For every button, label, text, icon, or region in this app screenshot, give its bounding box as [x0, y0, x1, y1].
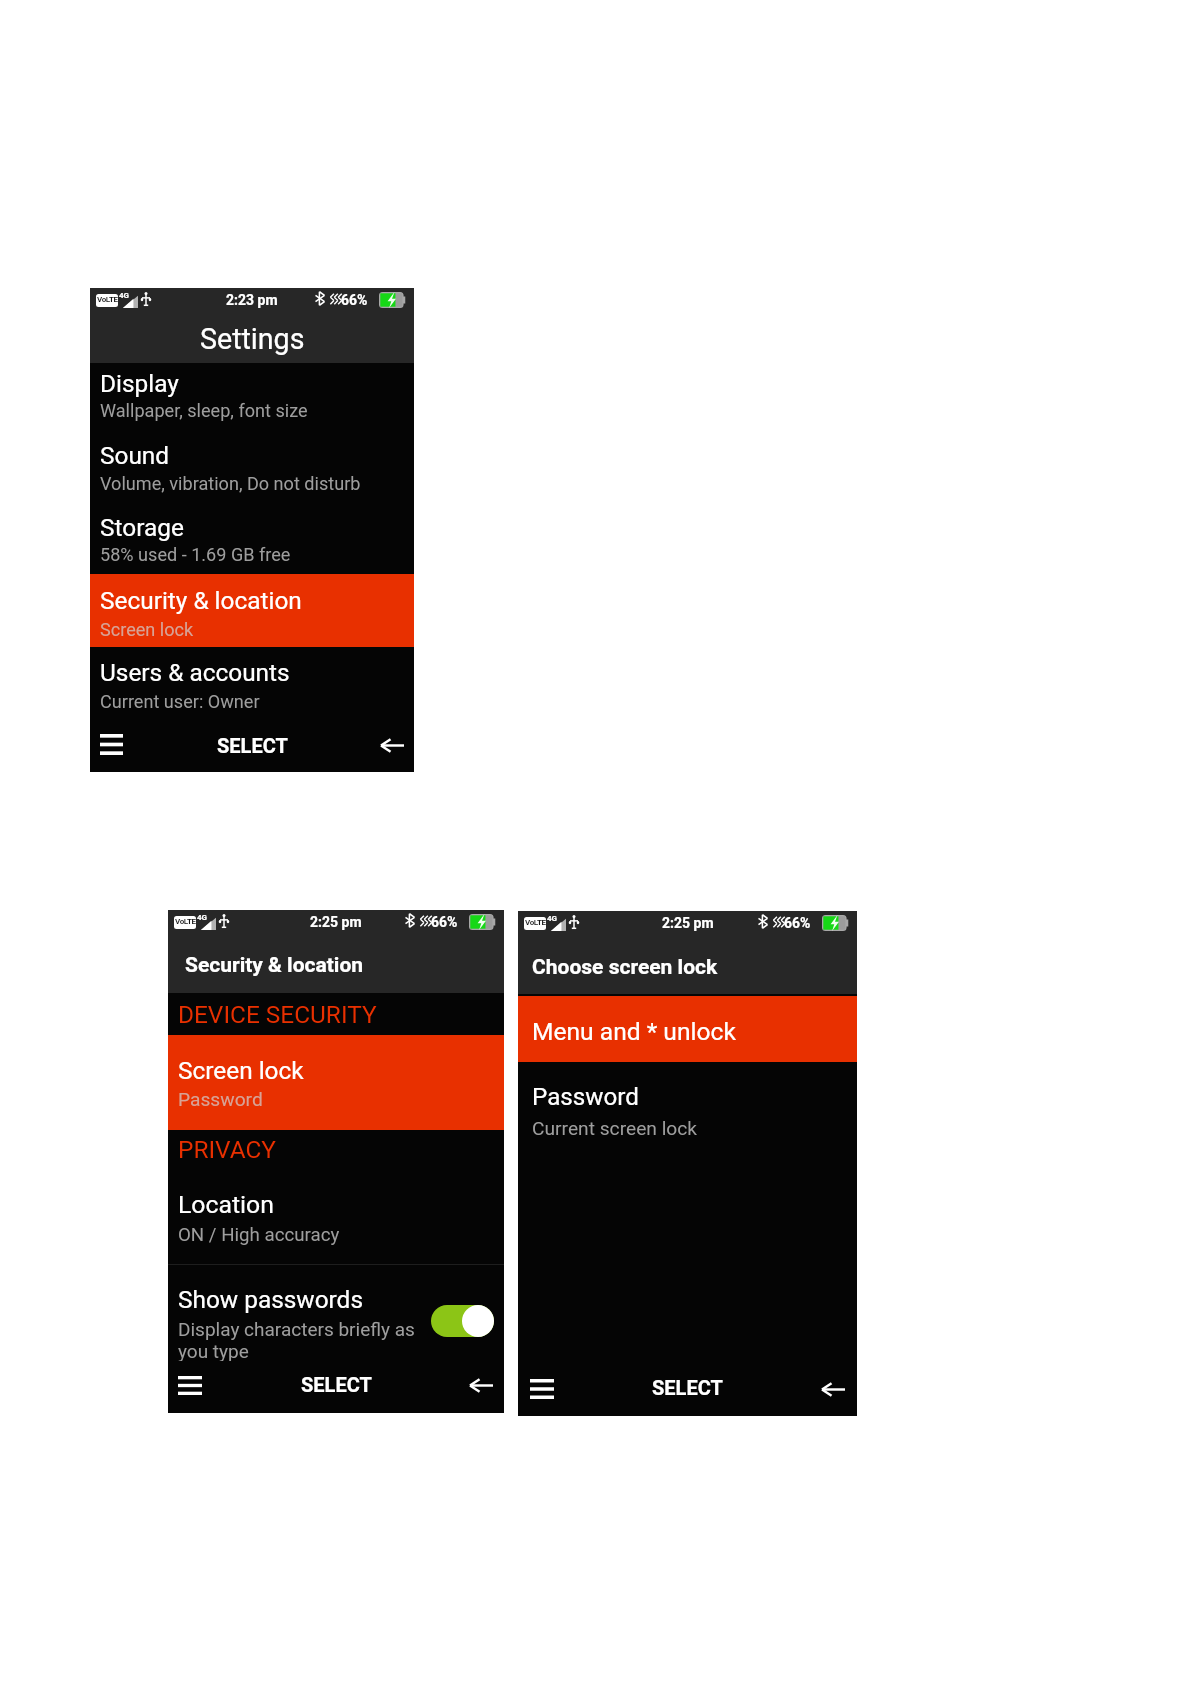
button[interactable]: Menu	[523, 1372, 561, 1406]
staticText: SELECT	[301, 1373, 372, 1396]
staticText: Current screen lock	[532, 1117, 698, 1140]
button[interactable]: Show passwords toggle	[424, 1299, 500, 1343]
staticText: VoLTE	[525, 918, 546, 927]
staticText: 66%	[431, 914, 458, 930]
button[interactable]: Show passwords	[168, 1276, 504, 1362]
staticText: 66%	[784, 915, 811, 931]
staticText: DEVICE SECURITY	[178, 1000, 377, 1029]
staticText: Current user: Owner	[100, 691, 260, 712]
staticText: Users & accounts	[100, 658, 290, 687]
staticText: Show passwords	[178, 1285, 363, 1314]
button[interactable]: Location	[168, 1182, 504, 1264]
staticText: Volume, vibration, Do not disturb	[100, 473, 361, 494]
button[interactable]: Menu and * unlock	[518, 996, 857, 1062]
staticText: 2:25 pm	[662, 915, 714, 931]
button[interactable]: SELECT	[301, 1368, 372, 1391]
button[interactable]: Back	[461, 1370, 501, 1401]
staticText: Screen lock	[100, 619, 194, 640]
staticText: Password	[532, 1083, 639, 1111]
staticText: Location	[178, 1190, 274, 1219]
staticText: 2:25 pm	[310, 914, 362, 930]
button[interactable]: Menu	[93, 727, 130, 762]
staticText: Wallpaper, sleep, font size	[100, 400, 308, 421]
staticText: 58% used - 1.69 GB free	[100, 544, 291, 565]
button[interactable]: SELECT	[217, 729, 288, 752]
button[interactable]: Menu	[171, 1369, 209, 1402]
staticText: VoLTE	[97, 295, 118, 304]
button[interactable]: Password	[518, 1074, 857, 1152]
staticText: VoLTE	[175, 917, 196, 926]
button[interactable]: Screen lock	[168, 1035, 504, 1130]
staticText: 66%	[341, 292, 368, 308]
staticText: Choose screen lock	[532, 955, 718, 980]
staticText: Sound	[100, 441, 170, 470]
staticText: Display characters briefly as you type	[178, 1318, 428, 1363]
button[interactable]: Security & location	[90, 574, 414, 647]
button[interactable]: Back	[372, 730, 412, 761]
staticText: PRIVACY	[178, 1135, 276, 1164]
staticText: Security & location	[100, 586, 302, 615]
staticText: Display	[100, 369, 179, 398]
button[interactable]: Back	[813, 1374, 853, 1405]
button[interactable]: Sound	[90, 435, 414, 507]
button[interactable]: Storage	[90, 507, 414, 575]
staticText: ON / High accuracy	[178, 1224, 340, 1246]
staticText: 4G	[197, 913, 208, 922]
staticText: 4G	[119, 291, 130, 300]
staticText: Menu and * unlock	[532, 1017, 736, 1046]
button[interactable]: SELECT	[652, 1371, 723, 1394]
staticText: 2:23 pm	[226, 292, 278, 308]
staticText: Password	[178, 1088, 263, 1111]
staticText: Settings	[200, 322, 305, 356]
staticText: SELECT	[217, 734, 288, 757]
button[interactable]: Display	[90, 363, 414, 435]
staticText: Storage	[100, 513, 184, 542]
staticText: 4G	[547, 914, 558, 923]
staticText: Screen lock	[178, 1056, 304, 1085]
button[interactable]: Users & accounts	[90, 647, 414, 719]
staticText: Security & location	[185, 953, 364, 978]
staticText: SELECT	[652, 1376, 723, 1399]
